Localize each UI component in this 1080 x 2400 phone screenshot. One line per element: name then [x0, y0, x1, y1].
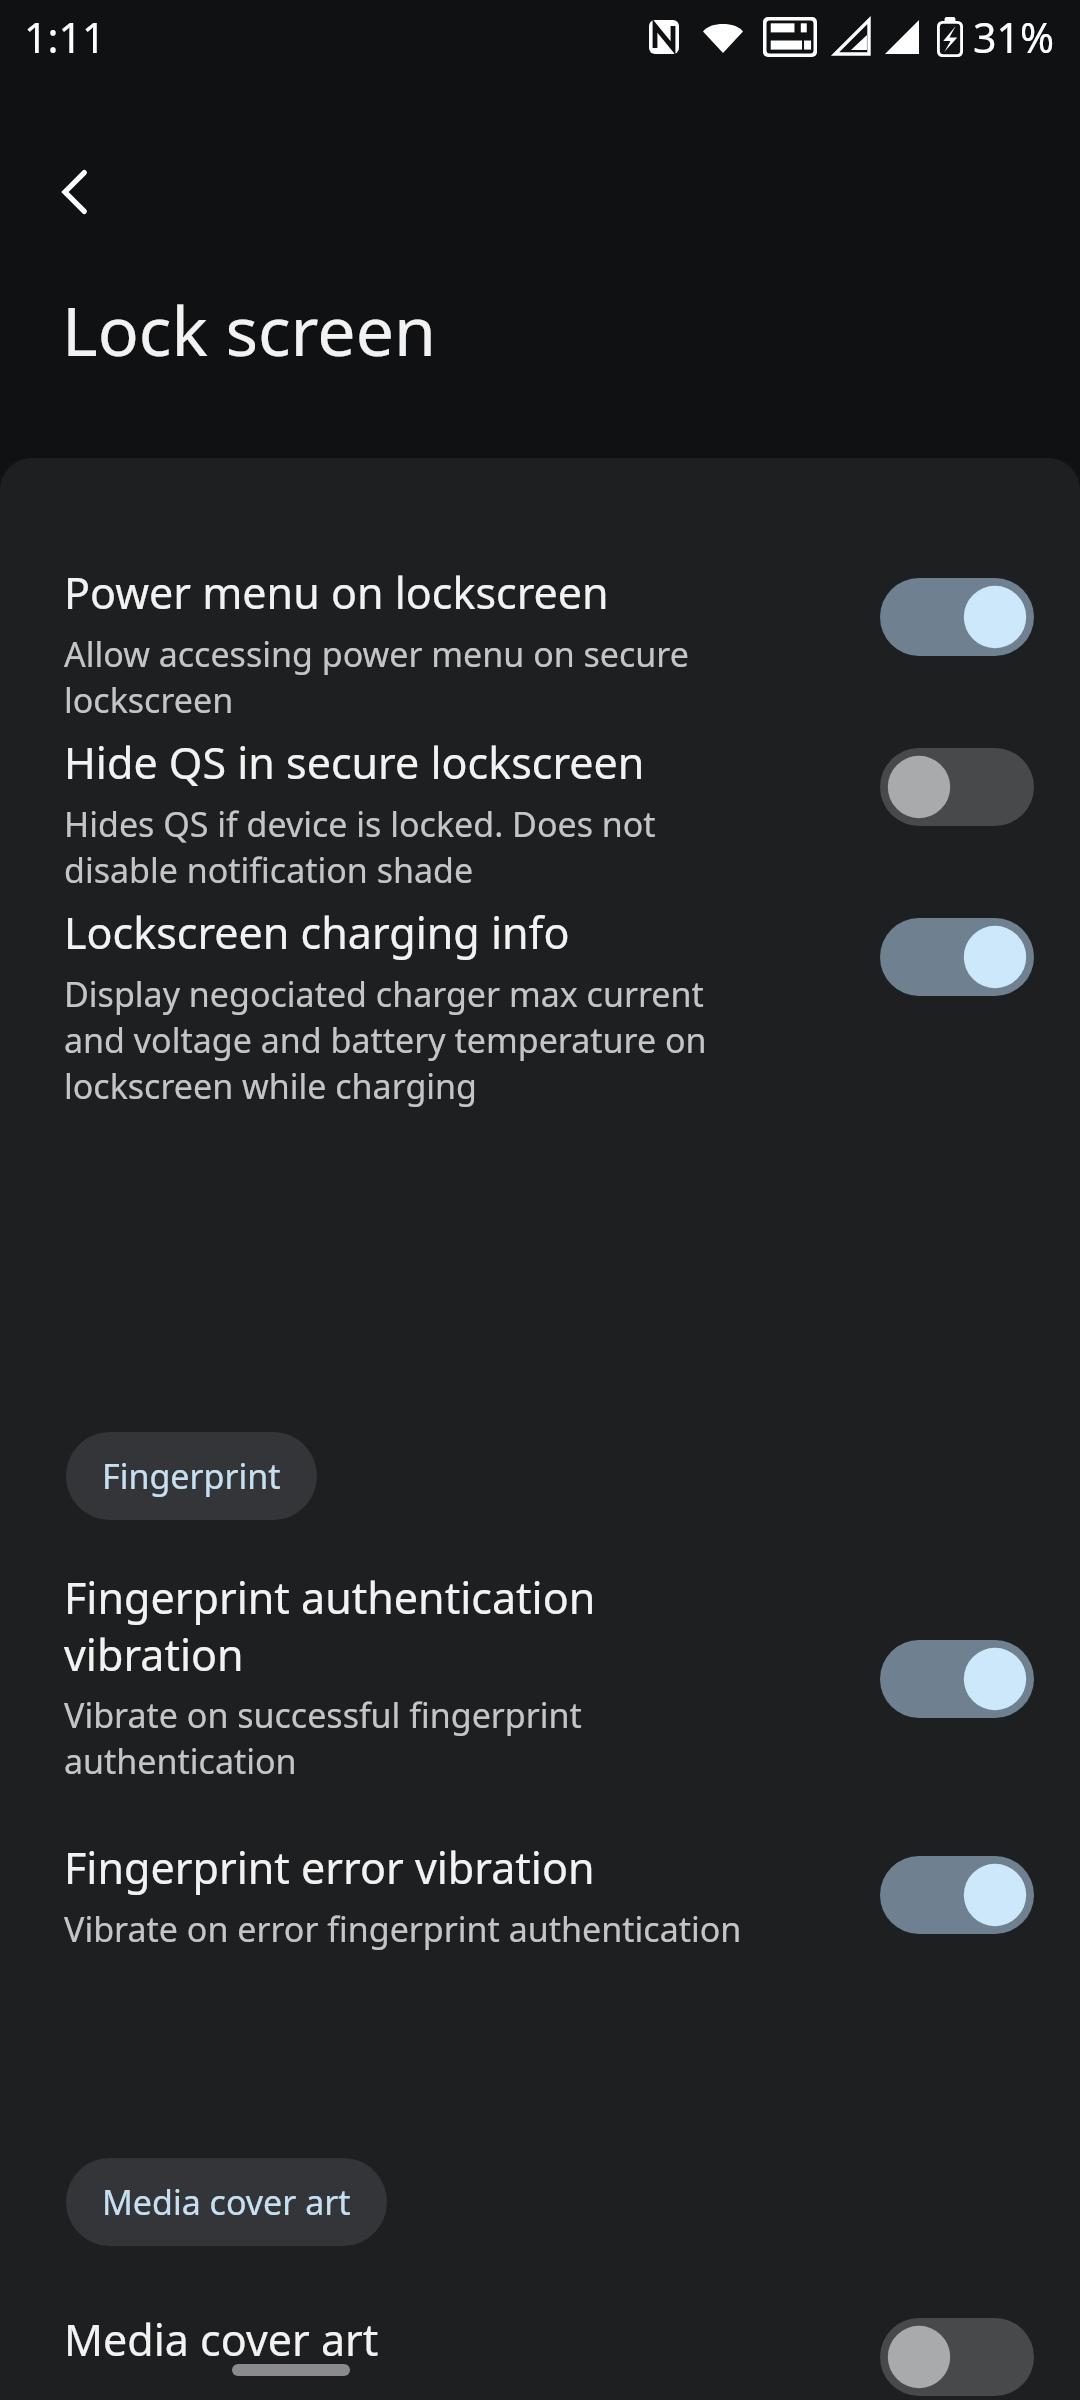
staticText: Hides QS if device is locked. Does not d… — [64, 801, 656, 893]
button[interactable]: Lockscreen charging info, on — [880, 918, 1034, 996]
button[interactable] — [0, 528, 1080, 718]
button[interactable]: Fingerprint authentication vibration, on — [880, 1640, 1034, 1718]
staticText: Power menu on lockscreen — [64, 563, 609, 622]
button[interactable]: Fingerprint — [66, 1432, 317, 1520]
staticText: Hide QS in secure lockscreen — [64, 733, 645, 792]
button[interactable] — [0, 1808, 1080, 1958]
staticText: Lock screen — [62, 283, 437, 376]
button[interactable] — [0, 703, 1080, 893]
staticText: Fingerprint — [102, 1453, 281, 1499]
button[interactable] — [0, 1538, 1080, 1778]
staticText: 31% — [973, 9, 1054, 65]
button[interactable]: Media cover art — [66, 2158, 387, 2246]
button[interactable]: Fingerprint error vibration, on — [880, 1856, 1034, 1934]
button[interactable]: Media cover art, off — [880, 2318, 1034, 2396]
staticText: Allow accessing power menu on secure loc… — [64, 631, 689, 723]
staticText: Media cover art — [64, 2310, 379, 2369]
staticText: Vibrate on error fingerprint authenticat… — [64, 1906, 742, 1952]
button[interactable]: Back — [28, 144, 124, 240]
button[interactable] — [0, 2288, 1080, 2400]
staticText: Vibrate on successful fingerprint authen… — [64, 1692, 582, 1784]
button[interactable]: Power menu on lockscreen, on — [880, 578, 1034, 656]
staticText: Fingerprint error vibration — [64, 1838, 595, 1897]
button[interactable]: Hide QS in secure lockscreen, off — [880, 748, 1034, 826]
staticText: 1:11 — [24, 9, 106, 65]
staticText: Lockscreen charging info — [64, 903, 570, 962]
staticText: Display negociated charger max current a… — [64, 971, 707, 1109]
staticText: Fingerprint authentication vibration — [64, 1568, 596, 1683]
button[interactable] — [0, 873, 1080, 1108]
staticText: Media cover art — [102, 2179, 351, 2225]
